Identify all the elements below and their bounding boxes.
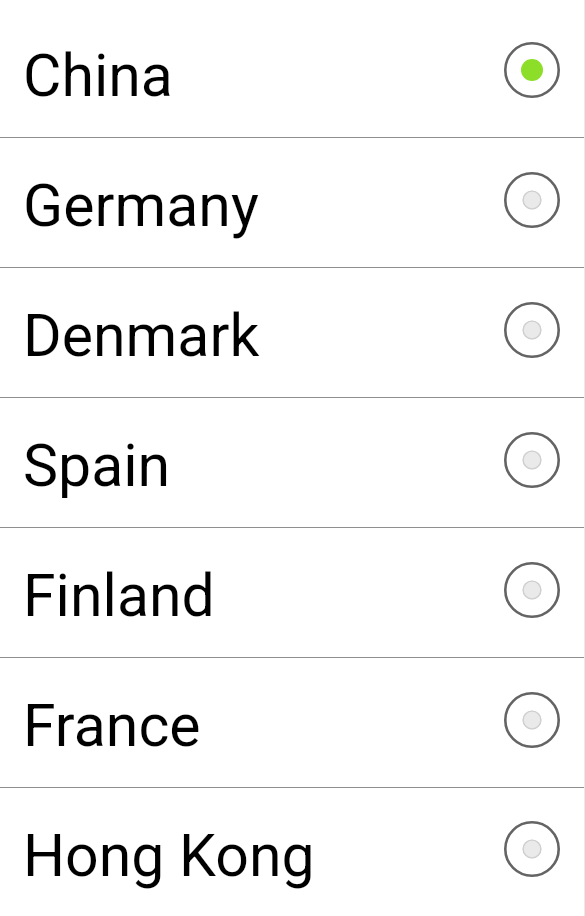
other: China selected [502, 40, 562, 100]
staticText: Hong Kong [23, 821, 502, 890]
staticText: Germany [23, 171, 502, 240]
other: Select France [502, 690, 562, 750]
other: Select Denmark [502, 300, 562, 360]
button[interactable]: Denmark [0, 268, 585, 397]
other: Select Finland [502, 560, 562, 620]
button[interactable]: China [0, 8, 585, 137]
staticText: Denmark [23, 301, 502, 370]
other: Select Spain [502, 430, 562, 490]
other: Select Germany [502, 170, 562, 230]
button[interactable]: France [0, 658, 585, 787]
button[interactable]: Hong Kong [0, 788, 585, 916]
other: Select Hong Kong [502, 819, 562, 879]
button[interactable]: Finland [0, 528, 585, 657]
staticText: Finland [23, 561, 502, 630]
staticText: France [23, 691, 502, 760]
button[interactable]: Germany [0, 138, 585, 267]
staticText: China [23, 41, 502, 110]
staticText: Spain [23, 431, 502, 500]
button[interactable]: Spain [0, 398, 585, 527]
